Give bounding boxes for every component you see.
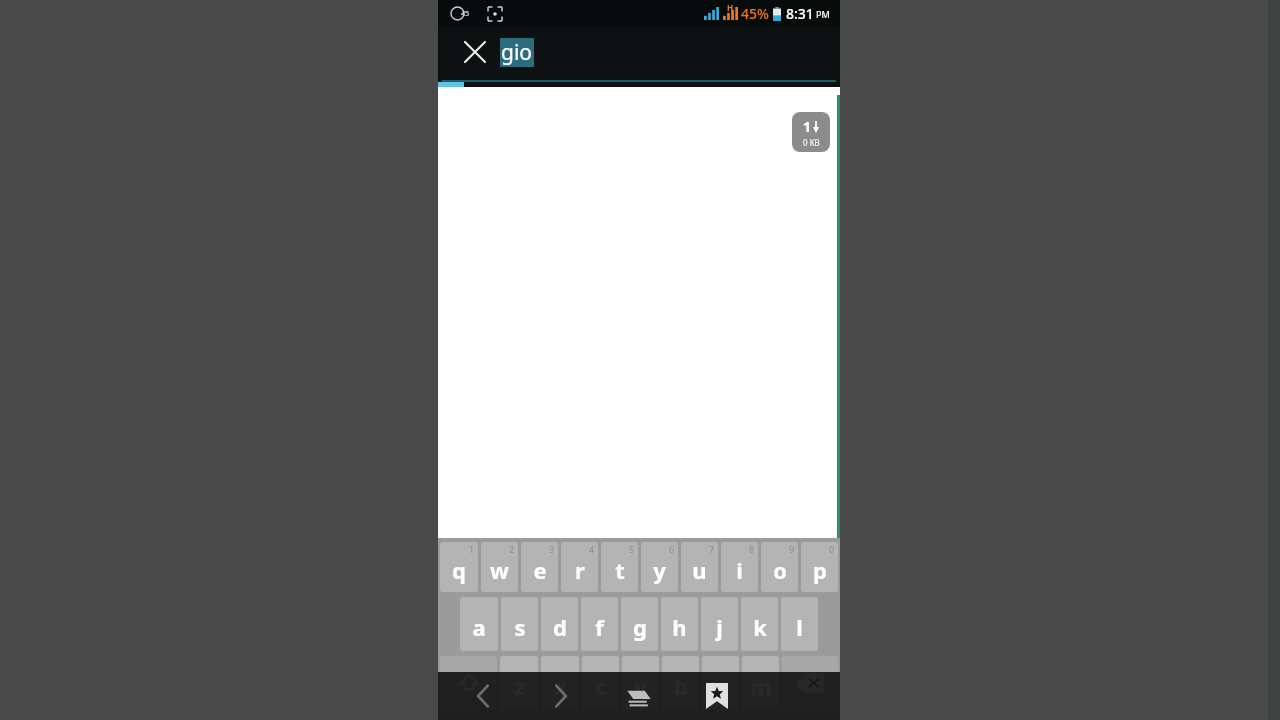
staticText: j	[716, 612, 723, 642]
button[interactable]: 7	[681, 542, 718, 592]
staticText: t	[615, 555, 625, 585]
staticText: x	[554, 671, 567, 701]
button[interactable]: z	[500, 656, 538, 710]
staticText: 6	[669, 543, 675, 555]
button[interactable]: Backspace	[782, 656, 838, 710]
button[interactable]: 9	[761, 542, 798, 592]
button[interactable]: 3	[521, 542, 558, 592]
button[interactable]: n	[702, 656, 739, 710]
staticText: s	[514, 612, 526, 642]
button[interactable]: j	[701, 597, 738, 651]
staticText: z	[514, 671, 525, 701]
staticText: k	[753, 612, 767, 642]
staticText: e	[533, 555, 547, 585]
button[interactable]: 1	[440, 542, 478, 592]
staticText: i	[736, 555, 743, 585]
button[interactable]: Tabs	[600, 672, 678, 720]
button[interactable]: f	[581, 597, 618, 651]
staticText: PM	[816, 8, 830, 20]
button[interactable]: 6	[641, 542, 678, 592]
button[interactable]: 8	[721, 542, 758, 592]
button[interactable]: g	[621, 597, 658, 651]
staticText: h	[672, 612, 687, 642]
button[interactable]: Bookmarks	[678, 672, 756, 720]
button[interactable]: 4	[561, 542, 598, 592]
button[interactable]: m	[742, 656, 779, 710]
staticText: 3	[549, 543, 555, 555]
button[interactable]: x	[541, 656, 579, 710]
staticText: c	[595, 671, 607, 701]
button[interactable]: 0	[801, 542, 838, 592]
staticText: H	[727, 2, 734, 13]
staticText: 4	[589, 543, 595, 555]
button[interactable]: 2	[481, 542, 518, 592]
staticText: 7	[709, 543, 715, 555]
staticText: u	[692, 555, 707, 585]
staticText: n	[713, 671, 728, 701]
button[interactable]: Shift	[440, 656, 497, 710]
button[interactable]: k	[741, 597, 778, 651]
staticText: p	[813, 555, 827, 585]
staticText: r	[575, 555, 585, 585]
staticText: 1	[469, 543, 475, 555]
staticText: a	[472, 612, 486, 642]
staticText: d	[553, 612, 567, 642]
button[interactable]: s	[501, 597, 538, 651]
staticText: 1	[803, 117, 812, 136]
button[interactable]: Data usage 0 KB	[792, 112, 830, 152]
button[interactable]: Clear	[456, 33, 494, 71]
staticText: 9	[789, 543, 795, 555]
staticText: 0 KB	[803, 137, 820, 148]
button[interactable]: 5	[601, 542, 638, 592]
button[interactable]: Back	[444, 672, 522, 720]
button[interactable]: v	[622, 656, 659, 710]
button[interactable]: d	[541, 597, 578, 651]
staticText: 8:31	[786, 4, 814, 23]
button[interactable]: h	[661, 597, 698, 651]
button[interactable]: a	[460, 597, 498, 651]
staticText: o	[773, 555, 787, 585]
staticText: y	[653, 555, 666, 585]
staticText: 45%	[741, 4, 769, 23]
staticText: 2	[509, 543, 515, 555]
staticText: 45	[461, 9, 470, 19]
button[interactable]: c	[582, 656, 619, 710]
button[interactable]: l	[781, 597, 818, 651]
staticText: q	[452, 555, 466, 585]
button[interactable]: gio	[501, 38, 533, 67]
staticText: f	[595, 612, 604, 642]
staticText: w	[490, 555, 509, 585]
staticText: l	[796, 612, 803, 642]
staticText: 8	[749, 543, 755, 555]
button[interactable]: Forward	[522, 672, 600, 720]
staticText: 0	[829, 543, 835, 555]
staticText: g	[633, 612, 647, 642]
staticText: gio	[501, 38, 533, 67]
staticText: v	[634, 671, 647, 701]
staticText: m	[750, 671, 772, 701]
staticText: b	[674, 671, 688, 701]
staticText: 5	[629, 543, 635, 555]
button[interactable]: b	[662, 656, 699, 710]
